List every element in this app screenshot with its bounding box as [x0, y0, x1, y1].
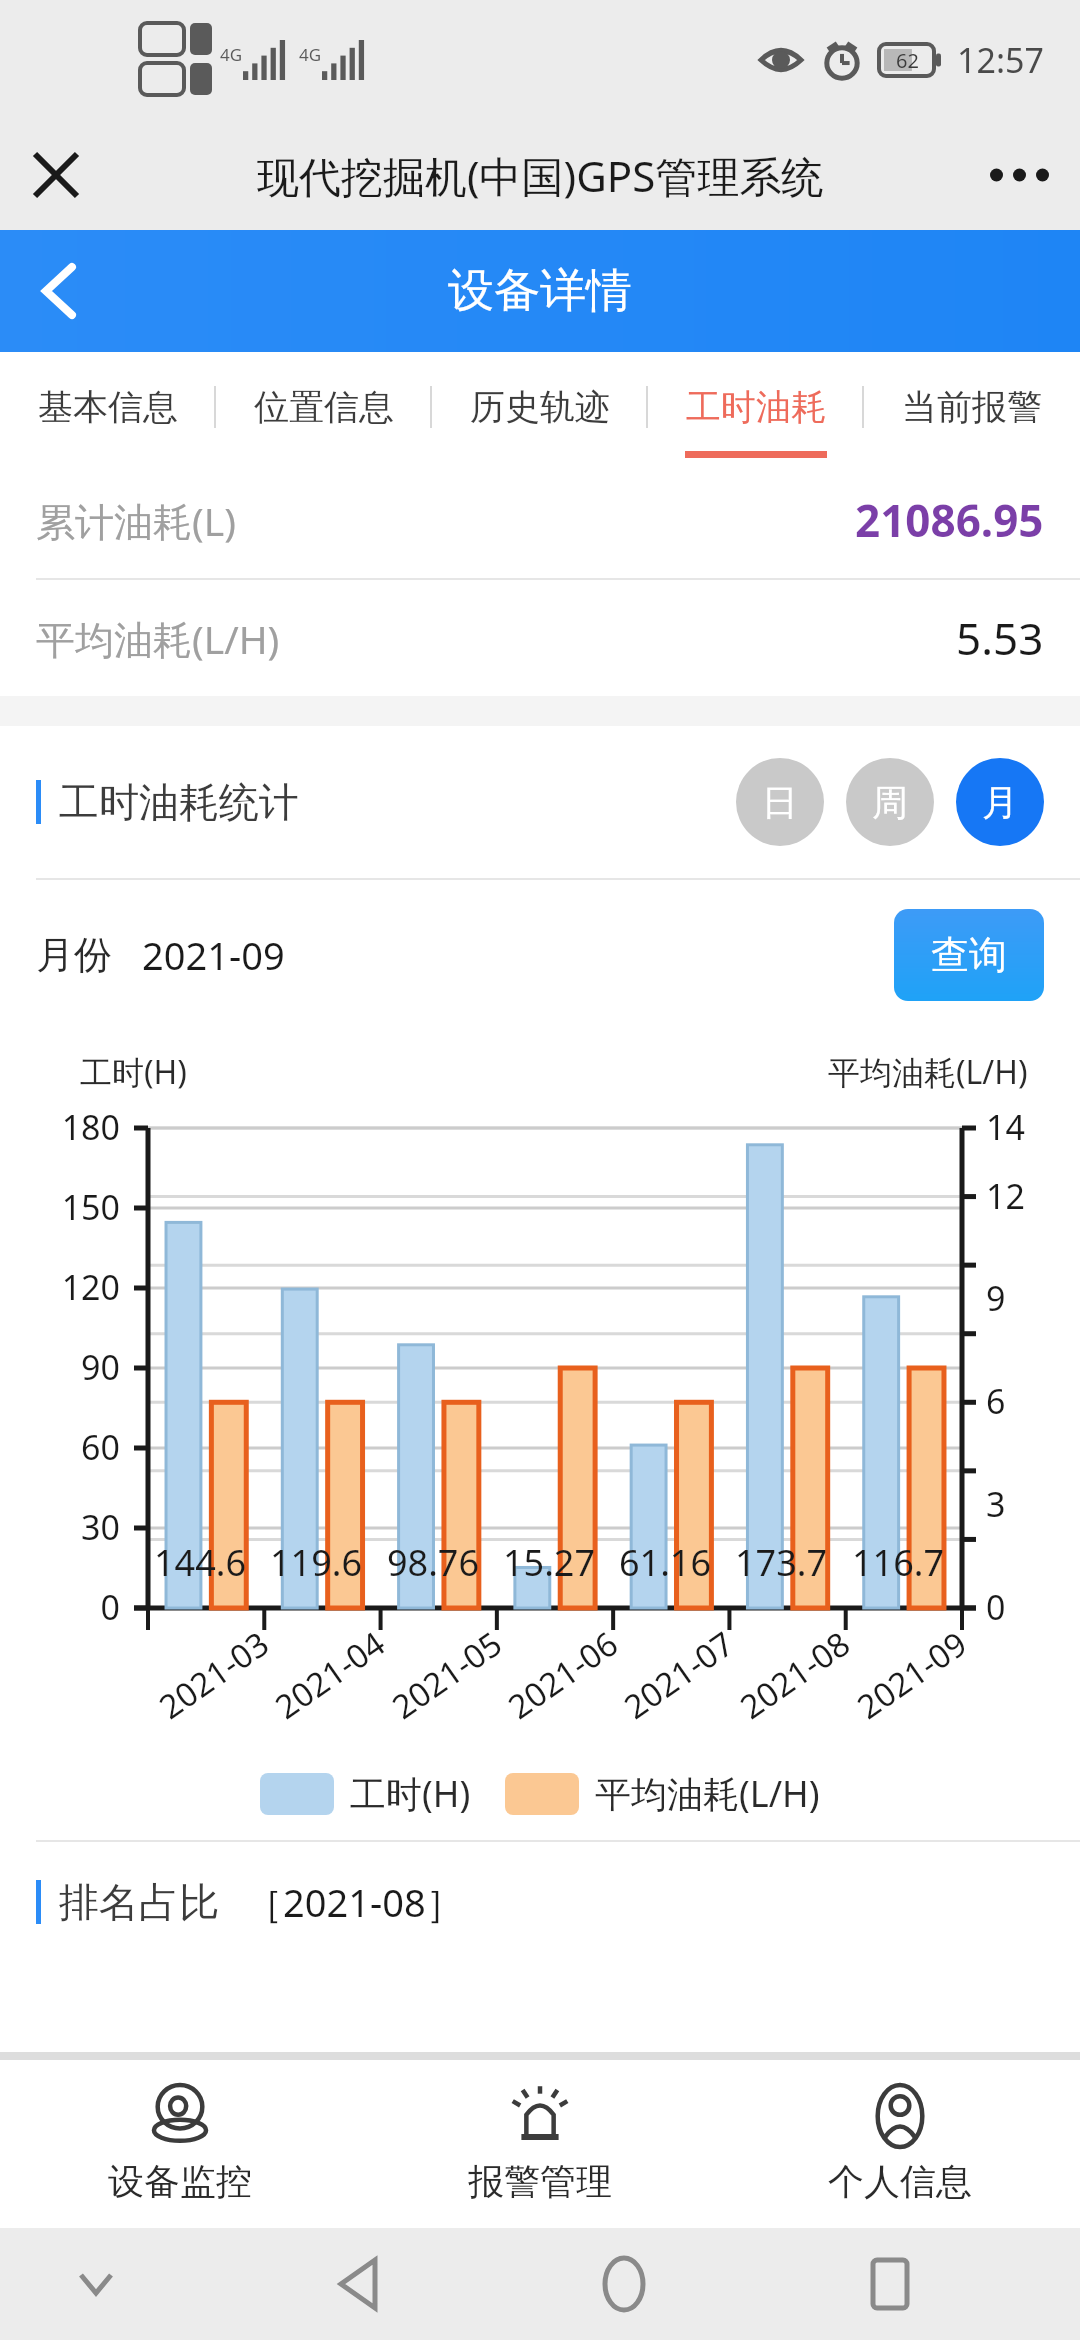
staticText: 2021-07	[615, 1621, 742, 1729]
staticText: 2021-05	[383, 1621, 510, 1729]
staticText: 工时油耗	[686, 385, 826, 429]
button[interactable]: Close	[18, 137, 94, 213]
staticText: 平均油耗(L/H)	[36, 612, 280, 665]
button[interactable]: 平均油耗(L/H)	[36, 580, 1044, 696]
staticText: 30	[20, 1504, 120, 1550]
staticText: 173.7	[735, 1538, 828, 1587]
staticText: 119.6	[270, 1538, 363, 1587]
button[interactable]: 当前报警	[864, 352, 1080, 462]
staticText: 9	[986, 1275, 1006, 1321]
button[interactable]: 历史轨迹	[432, 352, 648, 462]
button[interactable]: Back	[14, 246, 104, 336]
staticText: 15.27	[503, 1538, 596, 1587]
button[interactable]: Hide keyboard	[60, 2248, 132, 2320]
staticText: 平均油耗(L/H)	[595, 1769, 820, 1818]
button[interactable]: 个人信息	[720, 2060, 1080, 2228]
button[interactable]: 位置信息	[216, 352, 432, 462]
staticText: 月	[982, 780, 1018, 825]
button[interactable]: Home	[584, 2244, 664, 2324]
staticText: 报警管理	[468, 2159, 612, 2204]
staticText: 2021-03	[150, 1621, 277, 1729]
staticText: 62	[896, 47, 919, 74]
staticText: 61.16	[619, 1538, 712, 1587]
staticText: 平均油耗(L/H)	[828, 1050, 1028, 1094]
staticText: 4G	[299, 43, 322, 66]
staticText: 历史轨迹	[470, 385, 610, 429]
staticText: 设备监控	[108, 2159, 252, 2204]
staticText: 150	[20, 1184, 120, 1230]
staticText: 12:57	[957, 37, 1044, 83]
staticText: 2021-09	[142, 929, 285, 981]
staticText: 工时(H)	[80, 1050, 187, 1094]
staticText: 12	[986, 1173, 1025, 1219]
staticText: 116.7	[852, 1538, 945, 1587]
button[interactable]: Recent apps	[850, 2244, 930, 2324]
staticText: 现代挖掘机(中国)GPS管理系统	[257, 147, 824, 204]
button[interactable]: 工时油耗	[648, 352, 864, 462]
staticText: 2021-06	[499, 1621, 626, 1729]
button[interactable]: 报警管理	[360, 2060, 720, 2228]
staticText: 位置信息	[254, 385, 394, 429]
staticText: 设备详情	[448, 262, 632, 320]
staticText: 基本信息	[38, 385, 178, 429]
staticText: 0	[20, 1584, 120, 1630]
staticText: 98.76	[387, 1538, 480, 1587]
staticText: 累计油耗(L)	[36, 494, 236, 547]
staticText: 周	[872, 780, 908, 825]
button[interactable]: 设备监控	[0, 2060, 360, 2228]
staticText: 2021-04	[266, 1621, 393, 1729]
staticText: 月份	[36, 931, 112, 979]
staticText: 0	[986, 1584, 1006, 1630]
staticText: 21086.95	[855, 490, 1044, 550]
staticText: 4G	[220, 43, 243, 66]
button[interactable]: 月	[956, 758, 1044, 846]
staticText: ［2021-08］	[245, 1876, 464, 1928]
staticText: 工时(H)	[350, 1769, 471, 1818]
staticText: 144.6	[154, 1538, 247, 1587]
button[interactable]: 基本信息	[0, 352, 216, 462]
staticText: 当前报警	[902, 385, 1042, 429]
staticText: 120	[20, 1264, 120, 1310]
staticText: 排名占比	[59, 1877, 219, 1927]
staticText: 工时油耗统计	[59, 777, 299, 827]
staticText: 3	[986, 1481, 1006, 1527]
button[interactable]: 日	[736, 758, 824, 846]
button[interactable]: More options	[982, 137, 1058, 213]
button[interactable]: 周	[846, 758, 934, 846]
staticText: 5.53	[956, 608, 1044, 668]
staticText: 2021-08	[731, 1621, 858, 1729]
staticText: 查询	[931, 931, 1007, 979]
button[interactable]: 累计油耗(L)	[36, 462, 1044, 578]
staticText: 2021-09	[848, 1621, 975, 1729]
staticText: 个人信息	[828, 2159, 972, 2204]
staticText: 90	[20, 1344, 120, 1390]
button[interactable]: Back	[318, 2244, 398, 2324]
staticText: 14	[986, 1104, 1025, 1150]
button[interactable]: 查询	[894, 909, 1044, 1001]
staticText: 180	[20, 1104, 120, 1150]
staticText: 60	[20, 1424, 120, 1470]
staticText: 6	[986, 1378, 1006, 1424]
staticText: 日	[762, 780, 798, 825]
